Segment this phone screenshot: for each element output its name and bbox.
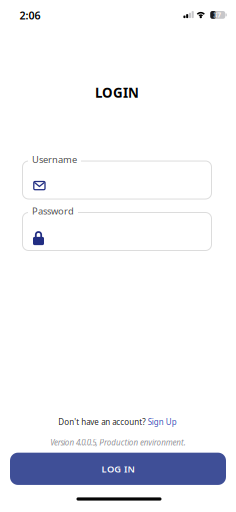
staticText: Version 4.0.0.5, Production environment. (50, 437, 186, 448)
staticText: LOGIN (95, 84, 139, 101)
staticText: Password (32, 205, 74, 217)
button[interactable]: Username (22, 160, 212, 199)
staticText: LOG IN (101, 463, 134, 475)
button[interactable]: LOG IN (10, 453, 226, 485)
button[interactable]: Password (22, 212, 212, 251)
staticText: 37 (213, 10, 221, 19)
staticText: 2:06 (19, 8, 40, 22)
staticText: Username (32, 153, 77, 166)
button[interactable]: Sign Up (148, 417, 177, 427)
staticText: Don't have an account? (58, 417, 145, 427)
staticText: Sign Up (148, 417, 177, 427)
